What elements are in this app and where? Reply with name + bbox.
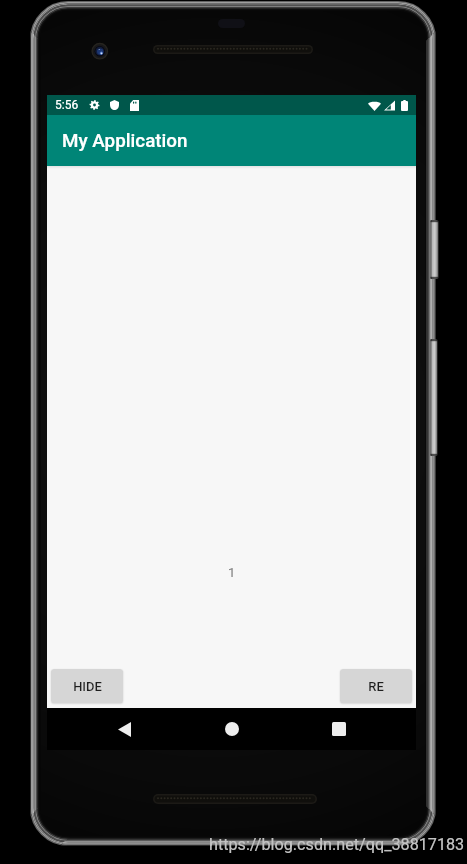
button[interactable]: Back: [94, 708, 154, 750]
staticText: HIDE: [73, 679, 102, 694]
button[interactable]: HIDE: [51, 669, 123, 703]
staticText: My Application: [62, 130, 188, 152]
button[interactable]: Home: [202, 708, 262, 750]
button[interactable]: Recents: [309, 708, 369, 750]
staticText: 5:56: [55, 98, 79, 112]
staticText: RE: [368, 679, 384, 694]
staticText: https://blog.csdn.net/qq_38817183: [209, 835, 465, 854]
button[interactable]: RE: [340, 669, 412, 703]
staticText: 1: [228, 565, 236, 580]
